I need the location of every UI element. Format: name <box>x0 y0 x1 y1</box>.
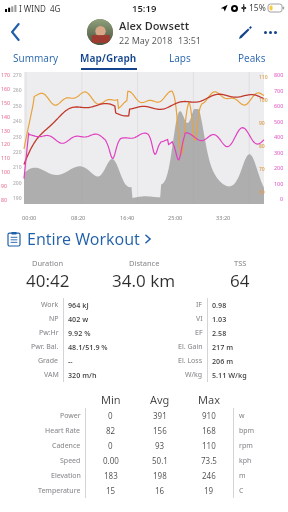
staticText: 80 <box>1 196 7 203</box>
staticText: Min <box>101 392 121 407</box>
staticText: Temperature <box>38 486 81 496</box>
staticText: 90 <box>259 120 265 127</box>
staticText: EF <box>195 328 203 338</box>
staticText: 70 <box>259 166 265 173</box>
staticText: 25:00 <box>168 214 183 222</box>
button[interactable]: Back <box>0 17 30 47</box>
staticText: 34.0 km <box>112 269 176 292</box>
staticText: kph <box>239 456 252 466</box>
staticText: C <box>239 486 244 496</box>
staticText: 5.11 W/kg <box>212 370 247 380</box>
staticText: 50.1 <box>152 455 168 466</box>
staticText: 110 <box>259 74 268 81</box>
button[interactable]: Entire Workout <box>0 226 288 252</box>
staticText: 16:40 <box>120 214 135 222</box>
staticText: 400 <box>274 133 284 140</box>
staticText: 08:20 <box>71 214 86 222</box>
staticText: 100 <box>259 97 268 104</box>
staticText: 210 <box>13 164 22 171</box>
staticText: 80 <box>259 143 265 150</box>
staticText: Pwr. Bal. <box>31 342 59 352</box>
staticText: 160 <box>1 85 10 92</box>
staticText: 240 <box>13 118 22 125</box>
staticText: 402 w <box>68 314 89 324</box>
button[interactable]: Map/Graph <box>72 48 144 70</box>
staticText: 190 <box>13 195 22 202</box>
staticText: 964 kJ <box>68 300 89 310</box>
staticText: 33:20 <box>216 214 231 222</box>
staticText: 320 m/h <box>68 370 97 380</box>
staticText: 300 <box>274 149 284 156</box>
staticText: 15 <box>106 485 116 496</box>
staticText: VI <box>196 314 203 324</box>
staticText: 90 <box>1 182 7 189</box>
staticText: Laps <box>169 51 191 65</box>
staticText: 700 <box>274 87 284 94</box>
staticText: 110 <box>1 154 10 161</box>
staticText: m <box>239 471 246 481</box>
staticText: 246 <box>202 470 216 481</box>
staticText: Speed <box>60 456 81 466</box>
staticText: 0.00 <box>103 455 119 466</box>
staticText: rpm <box>239 441 253 451</box>
staticText: 910 <box>202 410 216 421</box>
staticText: 270 <box>13 72 22 79</box>
staticText: 73.5 <box>201 455 217 466</box>
staticText: Pw:Hr <box>39 328 59 338</box>
staticText: 150 <box>1 99 10 106</box>
staticText: 391 <box>153 410 167 421</box>
staticText: TSS <box>234 258 247 268</box>
staticText: 4G <box>50 3 61 14</box>
button[interactable]: Laps <box>144 48 216 70</box>
staticText: El. Loss <box>178 356 203 366</box>
staticText: 130 <box>1 127 10 134</box>
staticText: Avg <box>150 392 170 407</box>
button[interactable]: Alex Dowsett <box>87 18 202 46</box>
staticText: -- <box>68 356 73 366</box>
staticText: Grade <box>38 356 59 366</box>
staticText: 40:42 <box>26 269 70 292</box>
staticText: 19 <box>204 485 214 496</box>
staticText: W/kg <box>185 370 203 380</box>
staticText: 500 <box>274 118 284 125</box>
button[interactable]: Summary <box>0 48 72 70</box>
staticText: 15:19 <box>132 2 157 15</box>
staticText: 64 <box>230 269 250 292</box>
staticText: 800 <box>274 71 284 78</box>
staticText: 0 <box>280 195 284 202</box>
staticText: Peaks <box>238 51 266 65</box>
staticText: 230 <box>13 134 22 141</box>
button[interactable]: Edit <box>232 20 256 44</box>
staticText: Map/Graph <box>80 51 137 65</box>
staticText: Summary <box>13 51 59 65</box>
staticText: 60 <box>259 189 265 196</box>
staticText: 170 <box>1 71 10 78</box>
staticText: 120 <box>1 140 10 147</box>
staticText: Distance <box>129 258 160 268</box>
staticText: 22 May 2018 <box>119 34 173 46</box>
staticText: 2.58 <box>212 328 227 338</box>
staticText: Work <box>41 300 59 310</box>
staticText: I WIND <box>19 3 46 14</box>
staticText: Elevation <box>51 471 81 481</box>
staticText: 156 <box>153 425 167 436</box>
staticText: 217 m <box>212 342 234 352</box>
staticText: El. Gain <box>178 342 203 352</box>
staticText: 0.98 <box>212 300 227 310</box>
button[interactable]: More options <box>258 20 282 44</box>
staticText: 15% <box>249 2 266 14</box>
staticText: Heart Rate <box>45 426 81 436</box>
staticText: 16 <box>155 485 165 496</box>
staticText: bpm <box>239 426 255 436</box>
staticText: Duration <box>32 258 64 268</box>
staticText: 220 <box>13 149 22 156</box>
staticText: 0 <box>108 410 113 421</box>
staticText: Entire Workout <box>27 228 140 250</box>
staticText: 260 <box>13 87 22 94</box>
staticText: 93 <box>155 440 165 451</box>
staticText: 82 <box>106 425 116 436</box>
button[interactable]: Peaks <box>216 48 288 70</box>
staticText: IF <box>196 300 203 310</box>
staticText: 13:51 <box>178 34 202 46</box>
staticText: 110 <box>202 440 216 451</box>
